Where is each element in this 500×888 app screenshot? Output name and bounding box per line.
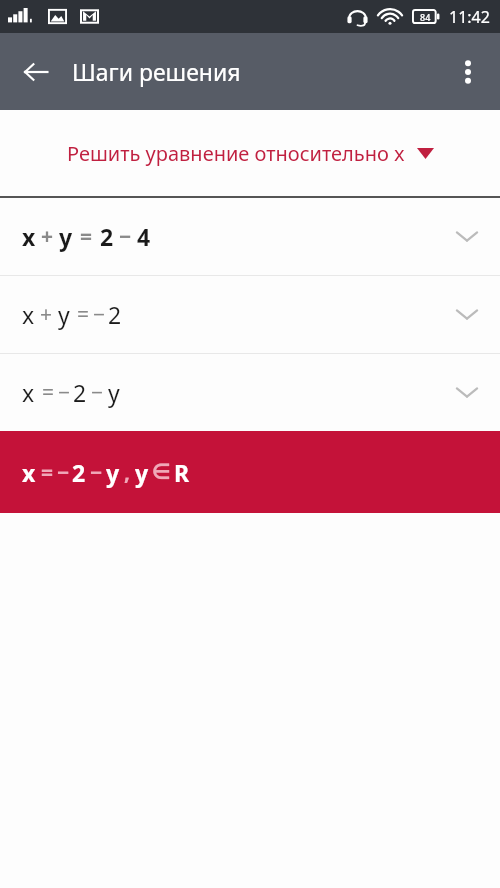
staticText: 2 bbox=[73, 377, 87, 408]
staticText: ∈ bbox=[152, 460, 171, 484]
staticText: − bbox=[91, 378, 104, 407]
staticText: − bbox=[119, 222, 132, 251]
button[interactable]: Back bbox=[10, 46, 62, 98]
staticText: = bbox=[80, 222, 93, 251]
staticText: 4 bbox=[137, 221, 151, 252]
button[interactable]: x bbox=[0, 198, 500, 275]
staticText: 2 bbox=[72, 457, 86, 488]
staticText: x bbox=[22, 457, 36, 488]
staticText: − bbox=[57, 458, 70, 487]
staticText: + bbox=[40, 300, 53, 329]
staticText: y bbox=[135, 457, 149, 488]
button[interactable]: x bbox=[0, 431, 500, 513]
staticText: x bbox=[22, 377, 35, 408]
staticText: y bbox=[59, 221, 73, 252]
staticText: y bbox=[108, 377, 120, 408]
button[interactable]: x bbox=[0, 354, 500, 431]
staticText: = bbox=[42, 378, 55, 407]
button[interactable]: More options bbox=[444, 48, 492, 96]
button[interactable]: Решить уравнение относительно x bbox=[0, 110, 500, 196]
staticText: x bbox=[22, 221, 36, 252]
staticText: R bbox=[174, 457, 190, 488]
staticText: − bbox=[58, 378, 71, 407]
staticText: 11:42 bbox=[449, 6, 490, 28]
staticText: − bbox=[90, 458, 103, 487]
staticText: Решить уравнение относительно x bbox=[67, 140, 405, 167]
staticText: 2 bbox=[108, 299, 122, 330]
staticText: 2 bbox=[100, 221, 114, 252]
staticText: Шаги решения bbox=[72, 56, 241, 87]
staticText: y bbox=[106, 457, 120, 488]
staticText: = bbox=[77, 300, 90, 329]
staticText: 84 bbox=[420, 11, 431, 23]
staticText: − bbox=[93, 300, 106, 329]
button[interactable]: x bbox=[0, 276, 500, 353]
staticText: x bbox=[22, 299, 35, 330]
staticText: + bbox=[41, 222, 54, 251]
staticText: = bbox=[41, 458, 54, 487]
staticText: y bbox=[58, 299, 70, 330]
staticText: , bbox=[124, 458, 130, 487]
